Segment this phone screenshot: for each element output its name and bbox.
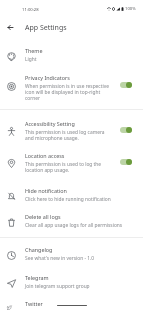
button[interactable]: Accessibility Setting xyxy=(0,120,143,152)
staticText: Privacy Indicators xyxy=(25,74,70,81)
button[interactable]: Location access xyxy=(0,152,143,187)
staticText: Theme xyxy=(25,47,43,54)
staticText: Hide notification xyxy=(25,187,67,194)
button[interactable]: Privacy Indicators xyxy=(0,74,143,120)
staticText: Clear all app usage logs for all permiss… xyxy=(25,222,123,229)
staticText: See what's new in version - 1.0 xyxy=(25,255,95,262)
staticText: 11:00:28 xyxy=(22,7,39,13)
staticText: App Settings xyxy=(25,23,67,33)
staticText: Click here to hide running notification xyxy=(25,196,111,203)
button[interactable]: Changelog xyxy=(0,246,143,274)
button[interactable]: Toggle Accessibility Setting xyxy=(120,126,132,133)
staticText: 100% xyxy=(125,6,136,12)
staticText: When permission is in use respective ico… xyxy=(25,83,113,101)
staticText: Location access xyxy=(25,152,65,159)
button[interactable]: Hide notification xyxy=(0,187,143,213)
button[interactable]: Theme xyxy=(0,47,143,74)
staticText: Light xyxy=(25,56,37,63)
staticText: Accessibility Setting xyxy=(25,120,75,127)
button[interactable]: Back xyxy=(3,20,18,35)
staticText: Telegram xyxy=(25,274,49,281)
staticText: Join telegram support group xyxy=(25,283,90,290)
staticText: This permission is used to log the locat… xyxy=(25,161,113,173)
button[interactable]: Toggle Privacy Indicators xyxy=(120,81,132,88)
button[interactable]: Twitter xyxy=(0,300,143,310)
button[interactable]: Toggle Location access xyxy=(120,158,132,165)
button[interactable]: Delete all logs xyxy=(0,213,143,246)
button[interactable]: Telegram xyxy=(0,274,143,300)
staticText: This permission is used log camera and m… xyxy=(25,129,113,141)
staticText: Twitter xyxy=(25,300,43,307)
staticText: Changelog xyxy=(25,246,53,253)
staticText: Delete all logs xyxy=(25,213,61,220)
